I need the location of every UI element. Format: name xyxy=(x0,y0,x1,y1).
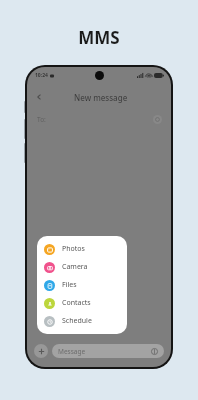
button[interactable]: Add contact xyxy=(153,115,162,124)
button[interactable]: Add attachment xyxy=(34,344,48,358)
button[interactable]: Schedule xyxy=(37,312,127,330)
staticText: Contacts xyxy=(62,298,91,308)
button[interactable]: Photos xyxy=(37,240,127,258)
button[interactable]: Files xyxy=(37,276,127,294)
button[interactable]: Emoji xyxy=(150,347,158,355)
staticText: Message xyxy=(58,347,150,356)
staticText: New message xyxy=(74,92,128,103)
staticText: Camera xyxy=(62,262,88,272)
staticText: Schedule xyxy=(62,316,92,326)
staticText: Files xyxy=(62,280,77,290)
staticText: MMS xyxy=(78,26,120,49)
button[interactable]: Camera xyxy=(37,258,127,276)
button[interactable]: Back xyxy=(32,90,46,104)
button[interactable]: Contacts xyxy=(37,294,127,312)
button[interactable]: Message xyxy=(52,344,164,358)
staticText: Photos xyxy=(62,244,85,254)
staticText: To: xyxy=(37,115,46,124)
staticText: 10:24 xyxy=(35,72,48,79)
